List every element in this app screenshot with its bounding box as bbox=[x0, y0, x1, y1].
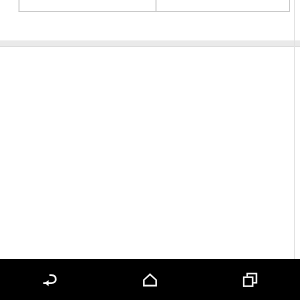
button[interactable]: Recent apps bbox=[200, 259, 300, 300]
button[interactable]: Home bbox=[100, 259, 200, 300]
button[interactable]: Back bbox=[0, 259, 100, 300]
